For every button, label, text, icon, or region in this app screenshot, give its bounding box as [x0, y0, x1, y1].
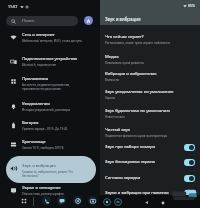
button[interactable]: Уведомления: [6, 100, 96, 113]
button[interactable]: All apps: [19, 196, 29, 206]
staticText: Включено: [105, 78, 120, 82]
button[interactable]: Сигналы зарядки: [100, 172, 200, 184]
staticText: Чистый звук: [105, 127, 131, 133]
staticText: Тёмная тема, размер шрифта: [22, 192, 64, 196]
staticText: Поиск: [22, 18, 35, 24]
staticText: Новое начало: [105, 115, 125, 119]
staticText: Громкость, вибросигнал, режим "Не беспок…: [22, 170, 74, 178]
button[interactable]: Сеть и интернет: [6, 31, 96, 44]
staticText: Батарея: [22, 120, 39, 126]
staticText: A: [87, 18, 90, 24]
staticText: Подключенные устройства: [22, 56, 77, 62]
staticText: Уведомления: [22, 101, 50, 107]
button[interactable]: Батарея: [6, 119, 96, 132]
button[interactable]: Accessibility: [102, 197, 111, 206]
button[interactable]: Чистый звук: [100, 125, 200, 140]
staticText: Мобильный интернет, Wi-Fi, точка доступа: [22, 39, 82, 43]
staticText: Подавление фонового шума транскриптора: [105, 134, 168, 138]
button[interactable]: Звук при наборе номера: [100, 141, 200, 153]
staticText: Звуки и вибрация при нажатии: [105, 190, 181, 196]
staticText: Звук при наборе номера: [105, 144, 181, 150]
button[interactable]: Back: [143, 199, 150, 206]
button[interactable]: Звук будильника по умолчанию: [100, 106, 200, 121]
button[interactable]: Хранилище: [6, 138, 96, 151]
button[interactable]: Звуки и вибрация при нажатии: [100, 187, 200, 199]
button[interactable]: Звук уведомления по умолчанию: [100, 87, 200, 102]
staticText: Что сейчас играет?: [105, 34, 144, 40]
staticText: Звук уведомления по умолчанию: [105, 89, 174, 95]
button[interactable]: Вибрация и виброотклик: [100, 69, 200, 84]
staticText: Экран и сенсорное: [22, 185, 61, 191]
button[interactable]: Звук блокировки экрана: [100, 156, 200, 168]
button[interactable]: Rotate: [113, 197, 122, 206]
button[interactable]: Подключенные устройства: [6, 55, 96, 68]
staticText: 85%: [188, 3, 196, 8]
button[interactable]: Camera: [88, 196, 97, 205]
staticText: Хранилище: [22, 139, 46, 145]
staticText: Медиа: [105, 54, 119, 60]
staticText: Звук и вибрация: [105, 16, 141, 22]
button[interactable]: Messages: [57, 196, 66, 205]
staticText: Приложения: [22, 76, 49, 82]
staticText: Звук и вибрация: [22, 163, 56, 169]
button[interactable]: Медиа: [100, 52, 200, 67]
staticText: Сигналы зарядки: [105, 175, 181, 181]
staticText: Уровень заряда – 85 %. До 19:45.: [22, 127, 69, 131]
staticText: Занято 16 %, свободно 209 ГБ: [22, 146, 64, 150]
staticText: Зарина: [105, 96, 116, 100]
staticText: История уведомлений, разговоры: [22, 108, 71, 112]
button[interactable]: Account: [84, 16, 93, 25]
button[interactable]: Приложения: [6, 75, 96, 92]
staticText: Звук будильника по умолчанию: [105, 108, 170, 114]
staticText: Вибрация и виброотклик: [105, 71, 157, 77]
staticText: Bluetooth, подключение: [22, 63, 57, 67]
staticText: Сеть и интернет: [22, 32, 55, 38]
staticText: 11:07: [8, 4, 18, 9]
staticText: Ассистент, недавние приложения, приложен…: [22, 83, 70, 91]
button[interactable]: Звук и вибрация: [6, 156, 96, 183]
staticText: Распознавать, какие треки играют поблизо…: [105, 41, 171, 45]
button[interactable]: Поиск: [6, 16, 78, 26]
staticText: Звук блокировки экрана: [105, 159, 181, 165]
button[interactable]: Экран и сенсорное: [6, 184, 96, 197]
staticText: Показывать проигрыватель: [105, 61, 145, 65]
button[interactable]: Chrome: [73, 196, 82, 205]
button[interactable]: Что сейчас играет?: [100, 32, 200, 47]
button[interactable]: Home: [159, 199, 166, 206]
button[interactable]: Phone: [42, 196, 51, 205]
